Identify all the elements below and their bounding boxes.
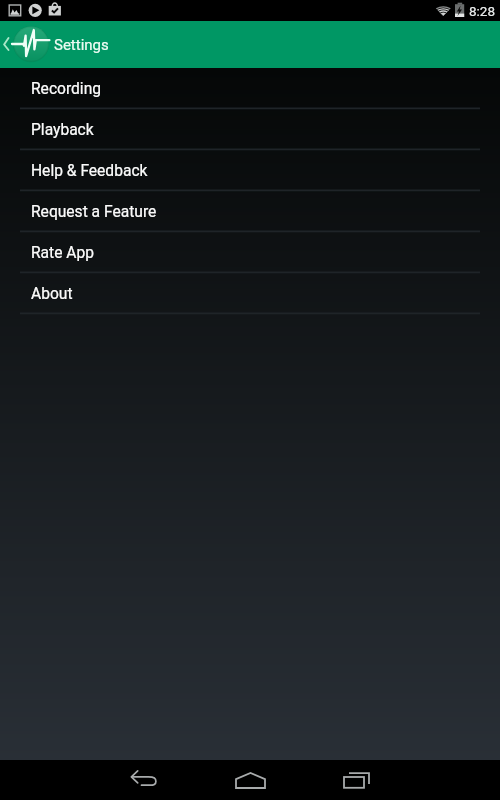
- button[interactable]: Playback: [0, 109, 500, 150]
- button[interactable]: Rate App: [0, 232, 500, 273]
- button[interactable]: Help & Feedback: [0, 150, 500, 191]
- staticText: Recording: [31, 80, 102, 98]
- staticText: About: [31, 285, 73, 303]
- button[interactable]: Navigate up: [0, 21, 500, 68]
- button[interactable]: Back: [104, 760, 184, 800]
- button[interactable]: Request a Feature: [0, 191, 500, 232]
- button[interactable]: About: [0, 273, 500, 314]
- staticText: Playback: [31, 121, 94, 139]
- staticText: Request a Feature: [31, 203, 157, 221]
- button[interactable]: Recent apps: [317, 760, 397, 800]
- staticText: Rate App: [31, 244, 95, 262]
- button[interactable]: Recording: [0, 68, 500, 109]
- staticText: Help & Feedback: [31, 162, 148, 180]
- staticText: 8:28: [469, 3, 496, 19]
- staticText: Settings: [54, 36, 109, 54]
- button[interactable]: Home: [210, 760, 290, 800]
